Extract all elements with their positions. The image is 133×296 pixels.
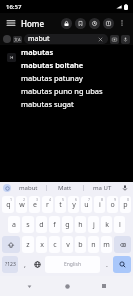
button[interactable]: g bbox=[62, 216, 73, 233]
button[interactable]: u bbox=[81, 196, 92, 213]
button[interactable]: n bbox=[88, 236, 99, 253]
staticText: s bbox=[26, 220, 30, 230]
staticText: f bbox=[53, 220, 56, 230]
button[interactable]: More options bbox=[116, 17, 128, 29]
button[interactable]: ?123 bbox=[2, 256, 18, 273]
staticText: 文A bbox=[14, 37, 21, 42]
staticText: r bbox=[46, 200, 49, 210]
staticText: 7 bbox=[88, 197, 91, 202]
staticText: Home bbox=[21, 18, 45, 29]
button[interactable]: f bbox=[49, 216, 60, 233]
button[interactable]: b bbox=[75, 236, 86, 253]
button[interactable]: English bbox=[45, 256, 100, 273]
staticText: mabut bbox=[28, 34, 96, 44]
button[interactable]: z bbox=[22, 236, 34, 253]
button[interactable]: mabutas boltahe bbox=[21, 58, 133, 71]
button[interactable]: History bbox=[89, 18, 100, 29]
staticText: mabutas bbox=[21, 47, 54, 57]
staticText: mabutas patunay bbox=[21, 73, 83, 83]
staticText: ?123 bbox=[5, 261, 16, 268]
button[interactable]: k bbox=[101, 216, 112, 233]
button[interactable]: Voice search bbox=[121, 35, 130, 44]
staticText: 1 bbox=[10, 197, 13, 202]
staticText: m bbox=[103, 240, 110, 250]
button[interactable]: Shift bbox=[2, 236, 20, 253]
staticText: 5 bbox=[62, 197, 65, 202]
staticText: , bbox=[24, 260, 26, 270]
button[interactable]: d bbox=[36, 216, 47, 233]
button[interactable]: Site info bbox=[3, 35, 11, 43]
button[interactable]: p bbox=[120, 196, 131, 213]
button[interactable]: v bbox=[62, 236, 73, 253]
staticText: 16:57 bbox=[6, 3, 22, 11]
button[interactable]: Voice input bbox=[120, 183, 130, 193]
button[interactable]: w bbox=[16, 196, 27, 213]
staticText: y bbox=[72, 200, 76, 210]
button[interactable]: r bbox=[42, 196, 53, 213]
button[interactable]: Backspace bbox=[114, 236, 131, 253]
button[interactable]: Comma bbox=[20, 256, 29, 273]
staticText: a bbox=[12, 220, 16, 230]
button[interactable]: Back bbox=[20, 277, 38, 295]
staticText: 0 bbox=[127, 197, 130, 202]
button[interactable]: c bbox=[49, 236, 60, 253]
button[interactable]: Matt bbox=[47, 182, 83, 194]
button[interactable]: i bbox=[94, 196, 105, 213]
staticText: 9 bbox=[114, 197, 117, 202]
button[interactable]: e bbox=[29, 196, 40, 213]
button[interactable]: s bbox=[22, 216, 34, 233]
button[interactable]: y bbox=[68, 196, 79, 213]
staticText: 4 bbox=[49, 197, 52, 202]
button[interactable]: m bbox=[101, 236, 112, 253]
staticText: e bbox=[33, 200, 37, 210]
button[interactable]: mabut bbox=[28, 34, 104, 44]
button[interactable]: Search bbox=[113, 256, 131, 273]
button[interactable]: Incognito bbox=[61, 18, 72, 29]
button[interactable]: Google Lens bbox=[110, 35, 119, 44]
button[interactable]: Clear bbox=[96, 35, 104, 43]
button[interactable]: Period bbox=[102, 256, 111, 273]
button[interactable]: j bbox=[88, 216, 99, 233]
button[interactable]: Change language bbox=[31, 256, 43, 273]
button[interactable]: l bbox=[114, 216, 125, 233]
button[interactable]: Home bbox=[58, 277, 76, 295]
button[interactable]: mabutas bbox=[21, 45, 133, 58]
staticText: ma UT bbox=[93, 184, 112, 192]
staticText: g bbox=[65, 220, 70, 230]
button[interactable]: Translate bbox=[13, 36, 22, 43]
button[interactable]: Downloads bbox=[103, 18, 114, 29]
button[interactable]: Google bbox=[3, 184, 11, 192]
button[interactable]: t bbox=[55, 196, 66, 213]
button[interactable]: h bbox=[75, 216, 86, 233]
staticText: 2 bbox=[23, 197, 26, 202]
button[interactable]: ma UT bbox=[84, 182, 120, 194]
staticText: mabutas boltahe bbox=[21, 60, 84, 70]
staticText: j bbox=[93, 220, 95, 230]
staticText: mabutas puno ng ubas bbox=[21, 86, 103, 96]
button[interactable]: q bbox=[2, 196, 14, 213]
button[interactable]: a bbox=[8, 216, 20, 233]
staticText: 8 bbox=[101, 197, 104, 202]
button[interactable]: Bookmarks bbox=[75, 18, 86, 29]
staticText: . bbox=[106, 260, 108, 270]
button[interactable]: Menu bbox=[5, 17, 17, 29]
button[interactable]: Recent apps bbox=[95, 277, 113, 295]
staticText: l bbox=[119, 220, 121, 230]
button[interactable]: mabut bbox=[11, 182, 46, 194]
button[interactable]: o bbox=[107, 196, 118, 213]
staticText: q bbox=[6, 200, 11, 210]
staticText: n bbox=[91, 240, 96, 250]
button[interactable]: mabutas patunay bbox=[21, 71, 133, 84]
staticText: p bbox=[123, 200, 128, 210]
button[interactable]: x bbox=[36, 236, 47, 253]
button[interactable]: mabutas puno ng ubas bbox=[21, 84, 133, 97]
button[interactable]: Previous bbox=[7, 53, 16, 62]
staticText: English bbox=[64, 261, 82, 268]
staticText: v bbox=[66, 240, 70, 250]
staticText: mabut bbox=[19, 184, 38, 192]
staticText: k bbox=[105, 220, 109, 230]
staticText: o bbox=[110, 200, 115, 210]
button[interactable]: mabutas sugat bbox=[21, 97, 133, 110]
staticText: h bbox=[78, 220, 83, 230]
